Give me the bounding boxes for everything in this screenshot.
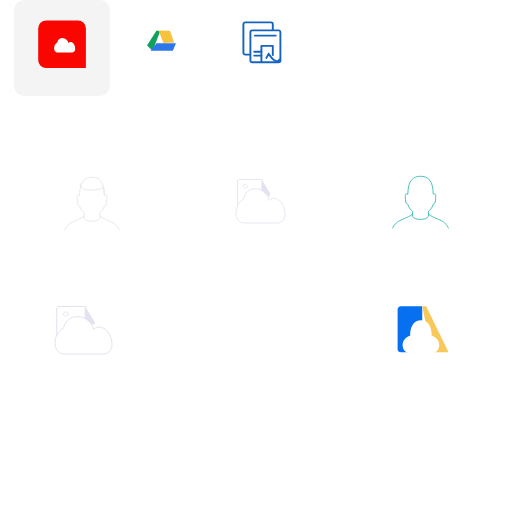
button[interactable]: Cloud storage <box>397 305 451 353</box>
button[interactable]: Cloud backup app <box>14 0 110 96</box>
button[interactable]: Restore documents <box>239 18 285 67</box>
button[interactable]: Profile photo <box>392 176 449 228</box>
button[interactable]: Cloud document <box>236 179 285 223</box>
button[interactable]: Cloud document <box>55 306 112 354</box>
button[interactable]: Google Drive <box>139 22 184 59</box>
button[interactable]: Contact placeholder <box>64 177 120 230</box>
